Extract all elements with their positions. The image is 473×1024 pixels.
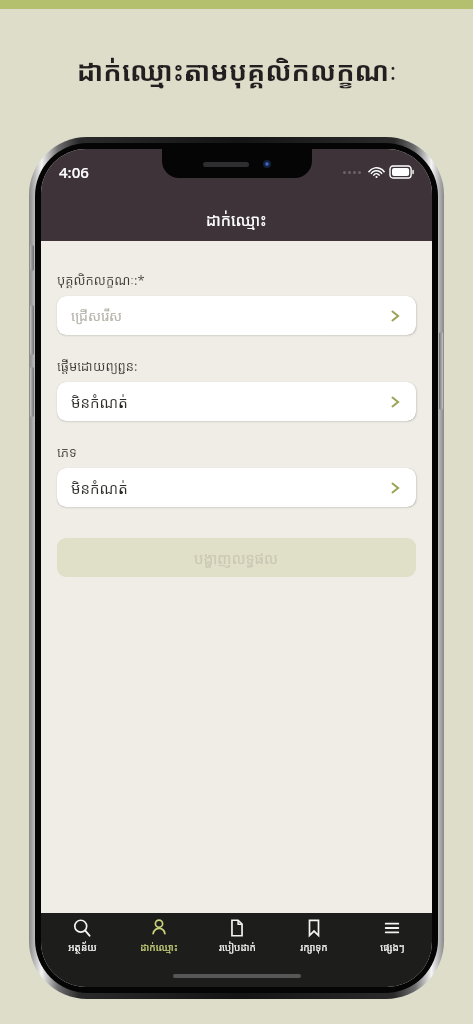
button[interactable]: How to name bbox=[200, 919, 274, 954]
button[interactable]: Search bbox=[45, 919, 119, 954]
button[interactable]: ជ្រើសរើស bbox=[57, 296, 416, 335]
button[interactable]: មិនកំណត់ bbox=[57, 468, 416, 507]
button[interactable]: មិនកំណត់ bbox=[57, 382, 416, 421]
staticText: បុគ្គលិកលក្ខណៈ:* bbox=[57, 271, 145, 289]
staticText: មិនកំណត់ bbox=[71, 478, 128, 498]
button[interactable]: Name by personality bbox=[122, 919, 196, 954]
staticText: ដាក់ឈ្មោះ bbox=[206, 209, 267, 231]
staticText: បង្ហាញលទ្ធផល bbox=[194, 548, 279, 568]
staticText: ផ្សេងៗ bbox=[380, 940, 405, 954]
staticText: មិនកំណត់ bbox=[71, 392, 128, 412]
button[interactable]: Saved bbox=[277, 919, 351, 954]
staticText: អត្ថន័យ bbox=[68, 940, 97, 954]
staticText: ដាក់ឈ្មោះ bbox=[140, 940, 178, 954]
staticText: ផ្ដើមដោយព្យព្ជន: bbox=[57, 357, 138, 375]
staticText: ដាក់ឈ្មោះតាមបុគ្គលិកលក្ខណៈ bbox=[77, 52, 397, 89]
button[interactable]: More bbox=[355, 919, 429, 954]
button[interactable]: បង្ហាញលទ្ធផល bbox=[57, 538, 416, 577]
staticText: រក្សាទុក bbox=[300, 940, 328, 954]
staticText: 4:06 bbox=[59, 162, 89, 182]
staticText: ជ្រើសរើស bbox=[71, 306, 122, 325]
staticText: របៀបដាក់ bbox=[219, 940, 256, 954]
staticText: ភេទ bbox=[57, 443, 77, 461]
